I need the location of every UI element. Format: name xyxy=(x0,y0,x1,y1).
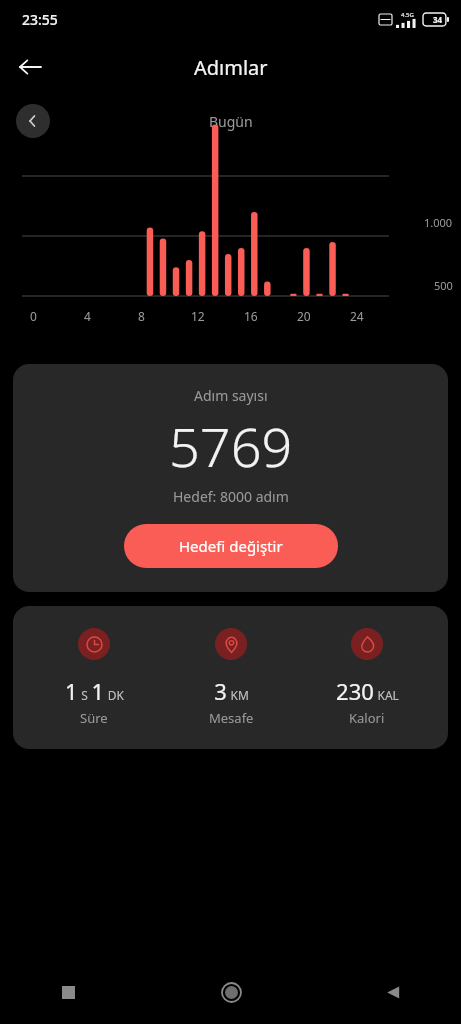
staticText: Hedefi değiştir xyxy=(179,536,283,556)
button[interactable]: Calories xyxy=(312,628,422,727)
staticText: 1.000 xyxy=(424,215,453,230)
staticText: Bugün xyxy=(209,112,253,131)
button[interactable]: Recents xyxy=(44,968,92,1016)
button[interactable]: Hedefi değiştir xyxy=(124,524,338,568)
staticText: 3 KM xyxy=(214,676,249,706)
staticText: 500 xyxy=(434,278,453,293)
staticText: 4 xyxy=(84,308,91,324)
staticText: Adımlar xyxy=(194,54,268,81)
button[interactable]: Home xyxy=(207,968,255,1016)
staticText: 20 xyxy=(297,308,311,324)
staticText: 23:55 xyxy=(22,10,58,29)
staticText: 4.5G xyxy=(401,11,414,19)
staticText: 12 xyxy=(191,308,205,324)
other: Calories xyxy=(351,628,383,660)
staticText: Adım sayısı xyxy=(194,386,268,405)
button[interactable]: Duration xyxy=(39,628,149,727)
staticText: 16 xyxy=(244,308,258,324)
staticText: 8 xyxy=(138,308,145,324)
other: Distance xyxy=(215,628,247,660)
button[interactable]: Back xyxy=(8,45,52,89)
button[interactable]: Previous day xyxy=(16,104,50,138)
staticText: 24 xyxy=(350,308,364,324)
button[interactable]: Back xyxy=(369,968,417,1016)
staticText: 34 xyxy=(433,14,443,25)
staticText: 230 KAL xyxy=(336,676,399,706)
staticText: Mesafe xyxy=(209,709,254,727)
other: Duration xyxy=(78,628,110,660)
staticText: 1 S 1 DK xyxy=(65,676,124,706)
staticText: Hedef: 8000 adım xyxy=(173,487,289,506)
staticText: 5769 xyxy=(169,409,293,483)
button[interactable]: Distance xyxy=(176,628,286,727)
staticText: Süre xyxy=(80,709,108,727)
staticText: 0 xyxy=(30,308,37,324)
staticText: Kalori xyxy=(349,709,385,727)
